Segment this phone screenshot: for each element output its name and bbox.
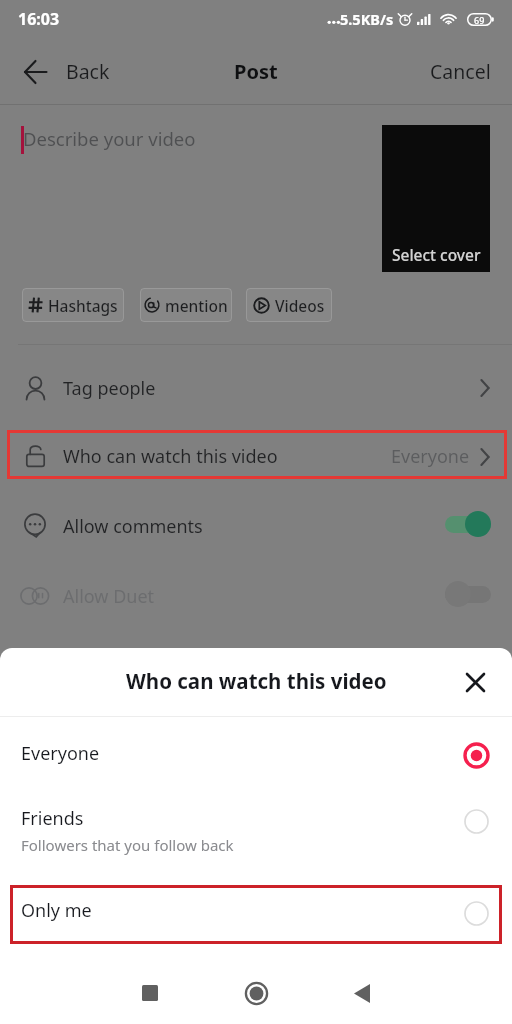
button[interactable]: mention bbox=[140, 288, 232, 322]
button[interactable]: Videos bbox=[246, 288, 332, 322]
staticText: Who can watch this video bbox=[126, 667, 387, 695]
staticText: Select cover bbox=[392, 244, 481, 265]
button[interactable] bbox=[445, 581, 491, 607]
staticText: Post bbox=[234, 58, 278, 85]
button[interactable] bbox=[445, 511, 491, 537]
staticText: 5.5KB/s bbox=[340, 9, 394, 29]
staticText: mention bbox=[165, 295, 228, 316]
button[interactable]: Cancel bbox=[412, 48, 512, 95]
button[interactable]: Friends bbox=[0, 795, 512, 884]
staticText: Who can watch this video bbox=[63, 444, 278, 469]
button[interactable]: Back bbox=[0, 48, 126, 95]
staticText: 16:03 bbox=[18, 8, 60, 30]
staticText: Describe your video bbox=[23, 126, 196, 151]
button[interactable]: Allow comments bbox=[0, 491, 512, 561]
button[interactable]: Select cover bbox=[382, 125, 490, 272]
staticText: Videos bbox=[275, 295, 325, 316]
staticText: Tag people bbox=[63, 376, 156, 401]
staticText: Friends bbox=[21, 806, 84, 831]
button[interactable]: Everyone bbox=[0, 717, 512, 795]
button[interactable]: Home bbox=[229, 966, 283, 1020]
staticText: Everyone bbox=[21, 741, 100, 766]
staticText: Hashtags bbox=[48, 295, 118, 316]
button[interactable]: Close bbox=[458, 665, 492, 699]
staticText: Allow Duet bbox=[63, 584, 155, 609]
button[interactable]: Back bbox=[335, 966, 389, 1020]
button[interactable]: Only me bbox=[0, 884, 512, 945]
staticText: Allow comments bbox=[63, 514, 203, 539]
staticText: Followers that you follow back bbox=[21, 835, 234, 855]
staticText: Everyone bbox=[391, 444, 470, 469]
staticText: Back bbox=[66, 58, 110, 85]
button[interactable]: Hashtags bbox=[22, 288, 124, 322]
button[interactable]: Who can watch this video bbox=[0, 421, 512, 491]
button[interactable]: Tag people bbox=[0, 355, 512, 421]
button[interactable]: Recents bbox=[123, 966, 177, 1020]
staticText: Only me bbox=[21, 898, 92, 923]
staticText: 69 bbox=[474, 14, 485, 26]
